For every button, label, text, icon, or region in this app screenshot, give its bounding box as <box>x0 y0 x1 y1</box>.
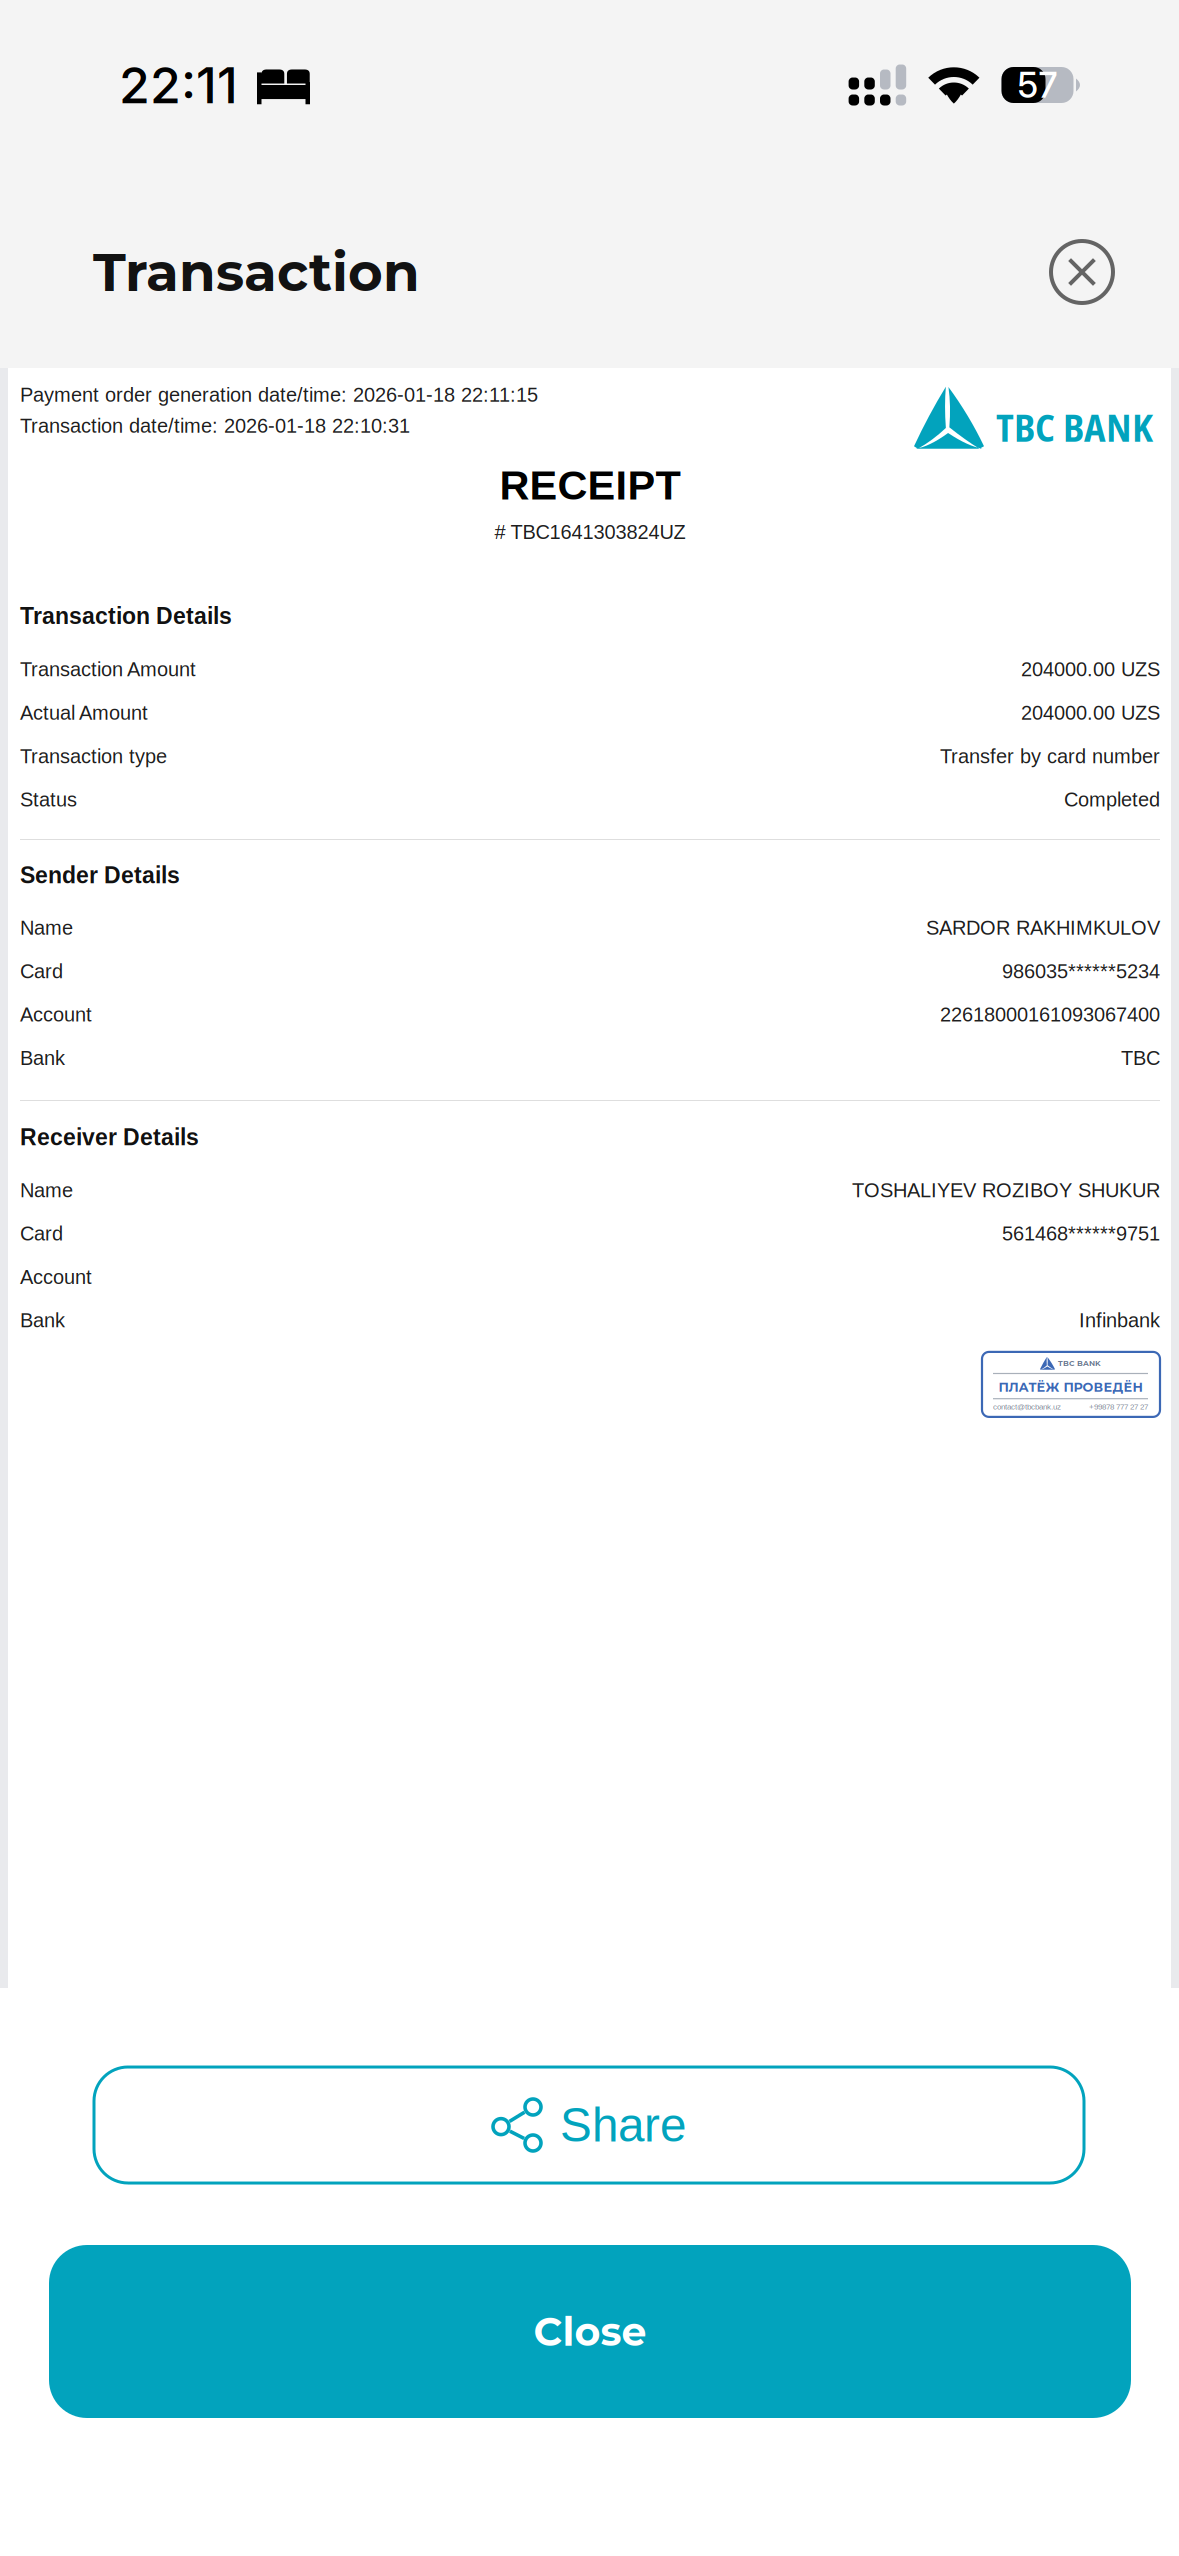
staticText: Name <box>20 917 73 939</box>
staticText: 22618000161093067400 <box>940 1003 1160 1026</box>
staticText: Infinbank <box>1079 1309 1160 1331</box>
staticText: TOSHALIYEV ROZIBOY SHUKUR <box>852 1179 1160 1201</box>
staticText: RECEIPT <box>499 462 680 508</box>
staticText: Card <box>20 960 63 982</box>
staticText: Payment order generation date/time: 2026… <box>20 383 538 406</box>
staticText: Transaction Amount <box>20 658 196 680</box>
staticText: Transaction type <box>20 745 167 767</box>
staticText: Transfer by card number <box>940 745 1160 767</box>
button[interactable]: Close <box>1049 239 1115 305</box>
staticText: # TBC1641303824UZ <box>494 521 685 543</box>
staticText: Share <box>560 2098 686 2152</box>
staticText: Account <box>20 1003 92 1026</box>
staticText: TBC BANK <box>1058 1359 1101 1368</box>
staticText: SARDOR RAKHIMKULOV <box>926 917 1160 939</box>
staticText: Completed <box>1064 788 1160 811</box>
staticText: Name <box>20 1179 73 1201</box>
staticText: Account <box>20 1266 92 1288</box>
staticText: Receiver Details <box>20 1124 199 1150</box>
staticText: Bank <box>20 1047 65 1069</box>
staticText: 204000.00 UZS <box>1021 702 1160 724</box>
staticText: Transaction <box>93 240 420 304</box>
staticText: 57 <box>1017 64 1057 106</box>
staticText: ПЛАТЁЖ ПРОВЕДЁН <box>998 1379 1142 1395</box>
staticText: TBC <box>1121 1047 1160 1069</box>
staticText: Transaction Details <box>20 603 232 629</box>
button[interactable]: Close <box>49 2245 1131 2418</box>
staticText: Bank <box>20 1309 65 1331</box>
staticText: TBC BANK <box>996 402 1153 453</box>
staticText: Card <box>20 1222 63 1245</box>
staticText: Transaction date/time: 2026-01-18 22:10:… <box>20 414 410 437</box>
staticText: Sender Details <box>20 862 180 888</box>
staticText: Close <box>533 2307 646 2356</box>
staticText: 22:11 <box>119 55 238 115</box>
staticText: 561468******9751 <box>1002 1222 1160 1245</box>
staticText: 204000.00 UZS <box>1021 658 1160 680</box>
staticText: Status <box>20 788 77 811</box>
staticText: +99878 777 27 27 <box>1089 1402 1148 1411</box>
staticText: 986035******5234 <box>1002 960 1160 982</box>
staticText: Actual Amount <box>20 702 148 724</box>
button[interactable]: Share <box>94 2067 1084 2183</box>
staticText: contact@tbcbank.uz <box>993 1402 1061 1411</box>
